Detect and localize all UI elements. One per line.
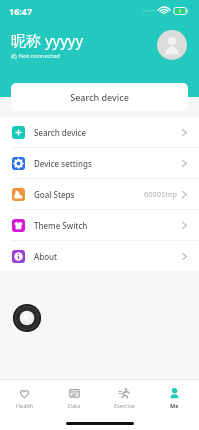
staticText: About bbox=[34, 251, 58, 262]
button[interactable]: Search device bbox=[0, 117, 199, 147]
button[interactable]: Data bbox=[49, 380, 99, 416]
staticText: Exercise bbox=[114, 402, 135, 409]
staticText: Me bbox=[170, 402, 179, 409]
button[interactable]: Theme Switch bbox=[0, 210, 199, 240]
staticText: Data bbox=[68, 402, 81, 409]
button[interactable]: Search device bbox=[11, 83, 188, 111]
button[interactable]: Exercise bbox=[99, 380, 149, 416]
button[interactable]: Me bbox=[149, 380, 199, 416]
button[interactable]: About bbox=[0, 241, 199, 271]
button[interactable]: Profile avatar bbox=[157, 30, 187, 60]
staticText: Device settings bbox=[34, 158, 92, 169]
staticText: Health bbox=[16, 402, 34, 409]
staticText: Goal Steps bbox=[34, 189, 75, 200]
button[interactable]: Health bbox=[0, 380, 49, 416]
staticText: 6000Step bbox=[144, 189, 177, 199]
button[interactable]: Device settings bbox=[0, 148, 199, 178]
staticText: 16:47 bbox=[9, 5, 33, 17]
button[interactable]: Device ring bbox=[12, 303, 42, 333]
staticText: Theme Switch bbox=[34, 220, 88, 231]
staticText: 昵称 yyyyy bbox=[11, 30, 84, 50]
button[interactable]: Goal Steps bbox=[0, 179, 199, 209]
staticText: ぬ Not connected bbox=[11, 52, 61, 60]
staticText: Search device bbox=[34, 127, 87, 138]
staticText: Search device bbox=[70, 91, 129, 103]
